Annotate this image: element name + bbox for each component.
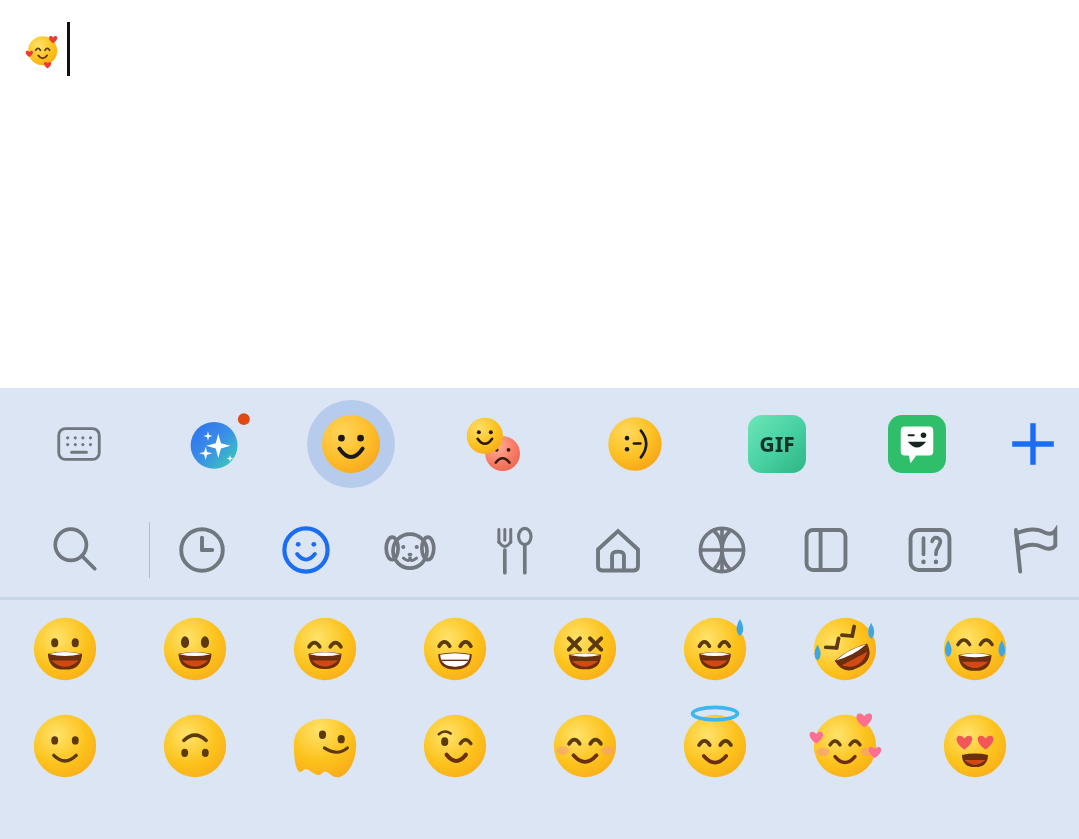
button[interactable]: Objects <box>774 500 878 600</box>
button[interactable]: Search emoji <box>0 500 149 600</box>
button[interactable]: Emoticons <box>564 388 706 500</box>
button[interactable]: Face with tears of joy <box>910 600 1040 697</box>
button[interactable]: Activities <box>670 500 774 600</box>
button[interactable]: Melting face <box>260 697 390 794</box>
button[interactable]: Food and drink <box>462 500 566 600</box>
button[interactable]: Symbols <box>878 500 982 600</box>
button[interactable]: Grinning face <box>0 600 130 697</box>
button[interactable]: GIF <box>706 388 848 500</box>
staticText: GIF <box>759 430 795 459</box>
button[interactable]: Winking face <box>390 697 520 794</box>
button[interactable]: Beaming face with smiling eyes <box>390 600 520 697</box>
button[interactable]: Upside-down face <box>130 697 260 794</box>
button[interactable]: Recently used <box>150 500 254 600</box>
button[interactable]: More options <box>986 388 1079 500</box>
button[interactable]: Travel and places <box>566 500 670 600</box>
button[interactable]: Flags <box>982 500 1079 600</box>
button[interactable]: Grinning face with big eyes <box>130 600 260 697</box>
button[interactable]: Smiling face with smiling eyes <box>260 600 390 697</box>
button[interactable]: Bitmoji <box>848 388 986 500</box>
button[interactable]: Animals and nature <box>358 500 462 600</box>
button[interactable]: Smileys and emotion <box>254 500 358 600</box>
button[interactable]: Grinning face with sweat <box>650 600 780 697</box>
button[interactable]: Rolling on the floor laughing <box>780 600 910 697</box>
button[interactable]: Smiling face with halo <box>650 697 780 794</box>
button[interactable]: Emoji stickers <box>422 388 564 500</box>
button[interactable]: Slightly smiling face <box>0 697 130 794</box>
button[interactable]: Grinning squinting face <box>520 600 650 697</box>
button[interactable]: Gemini assist <box>158 388 280 500</box>
button[interactable]: Smiling face with heart-eyes <box>910 697 1040 794</box>
button[interactable]: Smiling face with smiling eyes 2 <box>520 697 650 794</box>
button[interactable]: Switch to keyboard <box>0 388 158 500</box>
button[interactable]: Smiling face with hearts <box>780 697 910 794</box>
button[interactable]: Emoji <box>280 388 422 500</box>
